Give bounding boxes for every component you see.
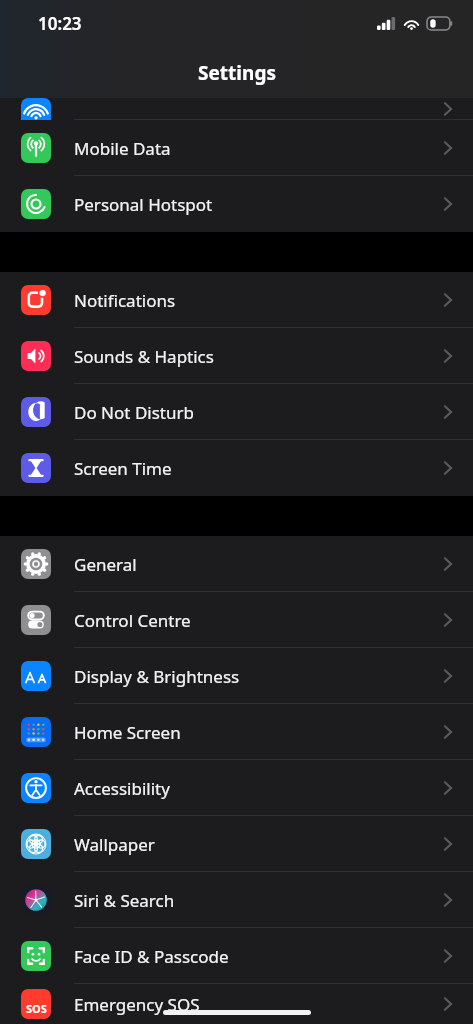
staticText: Accessibility bbox=[74, 777, 170, 800]
staticText: Screen Time bbox=[74, 457, 172, 480]
staticText: Mobile Data bbox=[74, 137, 171, 160]
staticText: Emergency SOS bbox=[74, 993, 200, 1016]
staticText: Personal Hotspot bbox=[74, 193, 213, 216]
button[interactable]: Mobile Data bbox=[0, 120, 473, 176]
button[interactable]: Siri & Search bbox=[0, 872, 473, 928]
button[interactable]: Face ID & Passcode bbox=[0, 928, 473, 984]
staticText: Siri & Search bbox=[74, 889, 175, 912]
other: Home indicator bbox=[163, 1010, 311, 1015]
button[interactable]: Home Screen bbox=[0, 704, 473, 760]
staticText: 10:23 bbox=[38, 12, 82, 35]
button[interactable]: Display & Brightness bbox=[0, 648, 473, 704]
button[interactable]: Accessibility bbox=[0, 760, 473, 816]
staticText: Notifications bbox=[74, 289, 176, 312]
button[interactable]: Control Centre bbox=[0, 592, 473, 648]
staticText: Home Screen bbox=[74, 721, 181, 744]
staticText: Control Centre bbox=[74, 609, 191, 632]
button[interactable]: Notifications bbox=[0, 272, 473, 328]
staticText: Sounds & Haptics bbox=[74, 345, 214, 368]
staticText: Display & Brightness bbox=[74, 665, 240, 688]
button[interactable]: Do Not Disturb bbox=[0, 384, 473, 440]
button[interactable]: Personal Hotspot bbox=[0, 176, 473, 232]
staticText: Wallpaper bbox=[74, 833, 155, 856]
staticText: Settings bbox=[198, 60, 276, 86]
staticText: SOS bbox=[26, 1001, 47, 1016]
button[interactable]: Emergency SOS bbox=[0, 984, 473, 1024]
button[interactable]: Sounds & Haptics bbox=[0, 328, 473, 384]
staticText: Do Not Disturb bbox=[74, 401, 194, 424]
button[interactable]: Screen Time bbox=[0, 440, 473, 496]
button[interactable]: General bbox=[0, 536, 473, 592]
staticText: Face ID & Passcode bbox=[74, 945, 229, 968]
button[interactable]: Wallpaper bbox=[0, 816, 473, 872]
staticText: General bbox=[74, 553, 137, 576]
button[interactable] bbox=[0, 98, 473, 120]
